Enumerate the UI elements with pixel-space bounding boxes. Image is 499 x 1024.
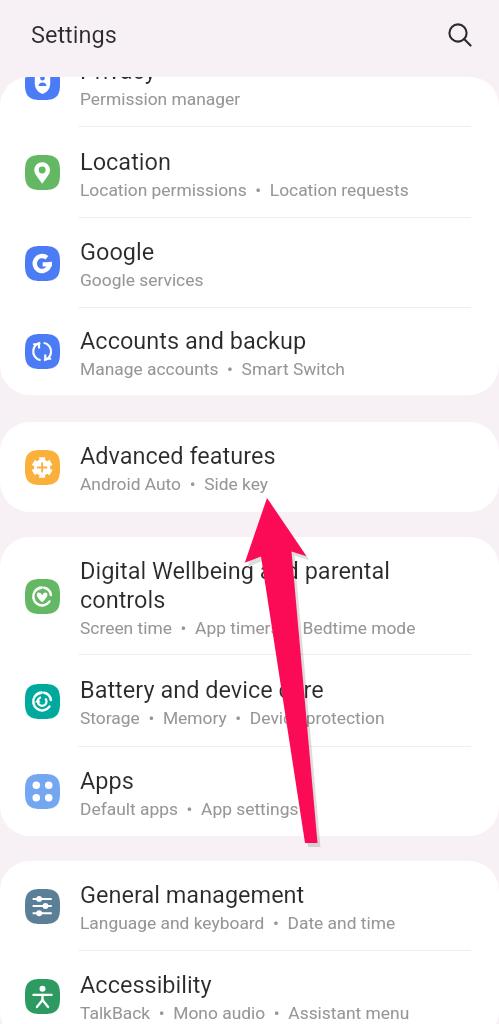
staticText: Accessibility (80, 971, 212, 999)
staticText: Screen time • App timers • Bedtime mode (80, 618, 416, 638)
button[interactable]: Google (0, 218, 499, 308)
staticText: Accounts and backup (80, 327, 307, 355)
staticText: Location permissions • Location requests (80, 180, 409, 200)
button[interactable]: Digital Wellbeing and parental controls (0, 537, 499, 655)
staticText: TalkBack • Mono audio • Assistant menu (80, 1003, 410, 1023)
staticText: Settings (31, 21, 117, 49)
staticText: Permission manager (80, 89, 241, 109)
staticText: Battery and device care (80, 676, 324, 704)
staticText: Google (80, 238, 155, 266)
button[interactable]: General management (0, 861, 499, 951)
staticText: General management (80, 881, 305, 909)
button[interactable]: Accessibility (0, 951, 499, 1024)
button[interactable]: Apps (0, 747, 499, 836)
staticText: Android Auto • Side key (80, 474, 269, 494)
button[interactable]: Accounts and backup (0, 308, 499, 395)
button[interactable]: Privacy (0, 77, 499, 127)
staticText: Language and keyboard • Date and time (80, 913, 396, 933)
staticText: Location (80, 148, 171, 176)
staticText: Privacy (80, 77, 156, 85)
button[interactable]: Location (0, 127, 499, 218)
button[interactable]: Search (436, 9, 480, 53)
staticText: Advanced features (80, 442, 276, 470)
staticText: Apps (80, 767, 134, 795)
button[interactable]: Advanced features (0, 422, 499, 512)
staticText: Digital Wellbeing and parental controls (80, 557, 475, 614)
staticText: Google services (80, 270, 204, 290)
staticText: Default apps • App settings (80, 799, 299, 819)
button[interactable]: Battery and device care (0, 655, 499, 747)
staticText: Storage • Memory • Device protection (80, 708, 385, 728)
staticText: Manage accounts • Smart Switch (80, 359, 345, 379)
